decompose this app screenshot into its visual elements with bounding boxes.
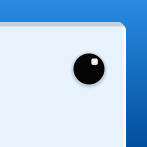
button[interactable]: Profile photo — [70, 50, 108, 88]
